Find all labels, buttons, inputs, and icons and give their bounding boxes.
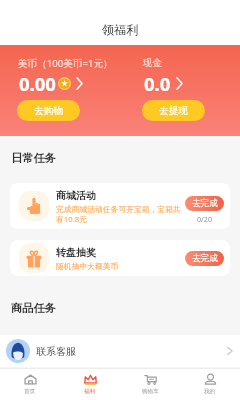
staticText: 我的 (204, 388, 216, 395)
staticText: 去完成 (192, 198, 218, 209)
button[interactable]: 去完成 (185, 251, 224, 266)
button[interactable]: 去购物 (17, 100, 80, 121)
button[interactable]: 联系客服 (0, 335, 240, 367)
button[interactable]: 去提现 (142, 100, 205, 121)
button[interactable]: 商城活动 (10, 183, 230, 229)
staticText: 现金 (143, 57, 163, 69)
button[interactable]: 福利 (60, 369, 120, 400)
staticText: 完成商城活动任务可开宝箱，宝箱共有10.8元 (56, 204, 183, 224)
staticText: 福利 (84, 388, 96, 395)
staticText: 购物车 (142, 388, 159, 395)
staticText: 首页 (24, 388, 36, 395)
button[interactable]: 首页 (0, 369, 60, 400)
button[interactable]: 我的 (180, 369, 240, 400)
staticText: 0/20 (197, 214, 213, 224)
staticText: 去提现 (159, 105, 189, 117)
staticText: 日常任务 (11, 151, 56, 165)
staticText: 商城活动 (56, 189, 96, 202)
button[interactable]: 转盘抽奖 (10, 240, 230, 276)
staticText: 商品任务 (11, 301, 56, 315)
staticText: 美币（100美币=1元） (18, 57, 113, 70)
staticText: 去购物 (34, 105, 64, 117)
staticText: 0.0 (144, 71, 171, 96)
staticText: 领福利 (102, 22, 139, 37)
staticText: 去完成 (192, 253, 218, 264)
staticText: 转盘抽奖 (56, 246, 96, 259)
button[interactable]: 去完成 (185, 196, 224, 211)
staticText: 随机抽中大额美币 (56, 261, 119, 271)
staticText: 0.00 (19, 71, 56, 96)
staticText: 联系客服 (36, 345, 76, 358)
button[interactable]: 购物车 (120, 369, 180, 400)
